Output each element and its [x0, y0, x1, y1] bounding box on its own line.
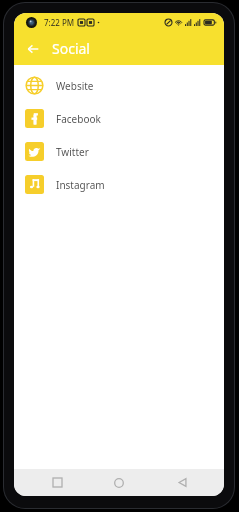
staticText: 7:22 PM: [44, 17, 75, 28]
button[interactable]: Back: [20, 36, 46, 62]
staticText: Instagram: [56, 178, 105, 192]
button[interactable]: Recents: [37, 469, 77, 496]
staticText: Facebook: [56, 112, 101, 126]
button[interactable]: Twitter: [14, 135, 224, 168]
button[interactable]: Instagram: [14, 168, 224, 201]
button[interactable]: Website: [14, 69, 224, 102]
button[interactable]: Back: [162, 469, 202, 496]
staticText: Social: [52, 39, 90, 58]
staticText: Twitter: [56, 145, 89, 159]
button[interactable]: Facebook: [14, 102, 224, 135]
staticText: Website: [56, 79, 94, 93]
button[interactable]: Home: [99, 469, 139, 496]
